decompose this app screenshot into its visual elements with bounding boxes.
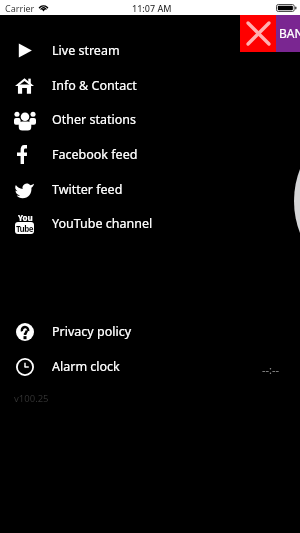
- staticText: v100.25: [14, 392, 49, 405]
- staticText: Facebook feed: [52, 146, 138, 163]
- staticText: Carrier: [5, 2, 35, 14]
- button[interactable]: Twitter feed: [0, 172, 300, 207]
- staticText: Tube: [16, 223, 33, 234]
- staticText: Info & Contact: [52, 77, 137, 94]
- staticText: BANNER: [279, 25, 300, 41]
- staticText: Other stations: [52, 111, 136, 128]
- staticText: Live stream: [52, 42, 120, 59]
- staticText: --:--: [262, 362, 280, 377]
- staticText: Privacy policy: [52, 323, 132, 340]
- staticText: 11:07 AM: [132, 2, 172, 14]
- staticText: YouTube channel: [52, 215, 153, 232]
- staticText: Alarm clock: [52, 358, 120, 375]
- button[interactable]: Info & Contact: [0, 68, 300, 103]
- staticText: Twitter feed: [52, 181, 123, 198]
- button[interactable]: Close ad: [240, 15, 276, 52]
- button[interactable]: Other stations: [0, 102, 300, 137]
- button[interactable]: Privacy policy: [0, 314, 300, 349]
- button[interactable]: Facebook feed: [0, 137, 300, 172]
- button[interactable]: Alarm clock: [0, 349, 300, 384]
- button[interactable]: You: [0, 206, 300, 241]
- button[interactable]: BANNER: [276, 15, 300, 52]
- staticText: You: [18, 212, 33, 223]
- button[interactable]: Live stream: [0, 33, 300, 68]
